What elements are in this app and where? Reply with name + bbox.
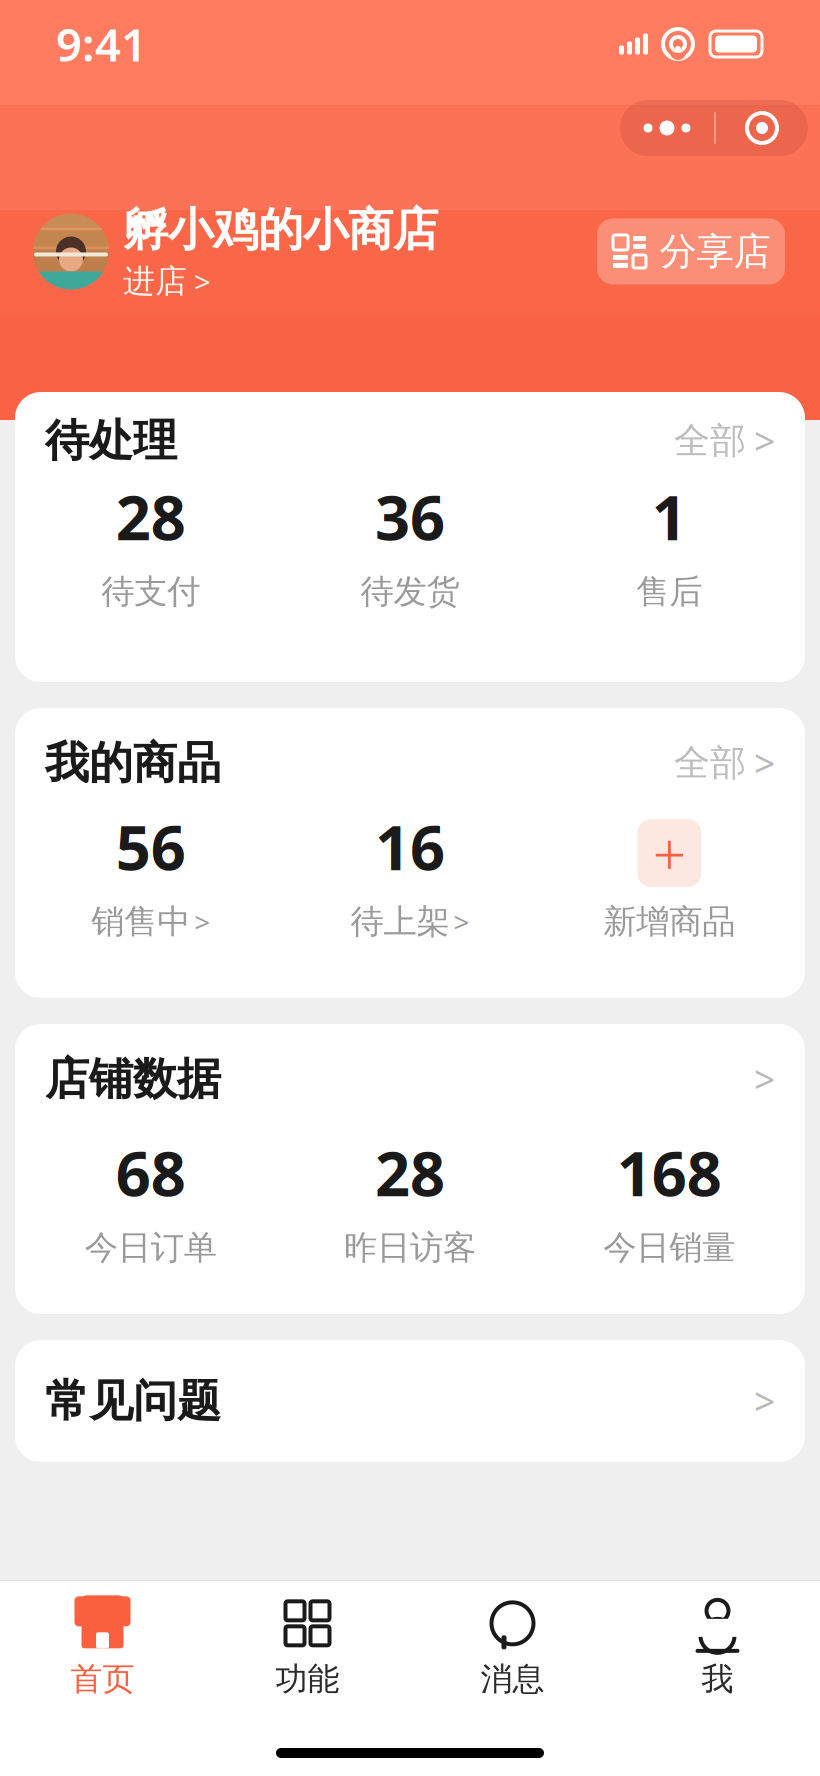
staticText: > xyxy=(754,1376,775,1426)
button[interactable]: 全部 xyxy=(674,741,775,785)
staticText: > xyxy=(754,738,775,788)
staticText: 36 xyxy=(375,476,445,557)
button[interactable]: 28 xyxy=(21,476,280,612)
staticText: 我 xyxy=(701,1659,733,1699)
staticText: 今日订单 xyxy=(85,1227,217,1268)
staticText: 16 xyxy=(375,806,445,887)
staticText: 店铺数据 xyxy=(45,1052,221,1106)
button[interactable]: 常见问题 xyxy=(15,1340,805,1462)
staticText: > xyxy=(194,262,211,301)
staticText: 168 xyxy=(617,1132,722,1213)
button[interactable]: Open 店铺数据 xyxy=(754,1057,775,1101)
button[interactable]: 28 xyxy=(280,1132,540,1268)
staticText: 孵小鸡的小商店 xyxy=(123,202,438,258)
staticText: 常见问题 xyxy=(45,1374,221,1428)
staticText: 新增商品 xyxy=(603,901,735,942)
staticText: 28 xyxy=(375,1132,445,1213)
button[interactable]: More xyxy=(620,100,714,156)
staticText: 消息 xyxy=(480,1659,544,1699)
staticText: > xyxy=(754,416,775,466)
staticText: > xyxy=(453,903,469,940)
button[interactable]: Close xyxy=(716,100,808,156)
staticText: 全部 xyxy=(674,419,746,463)
staticText: 68 xyxy=(116,1132,186,1213)
button[interactable]: 我 xyxy=(615,1593,820,1703)
staticText: 售后 xyxy=(636,571,702,612)
staticText: 昨日访客 xyxy=(344,1227,476,1268)
staticText: 分享店 xyxy=(659,229,770,274)
button[interactable]: 168 xyxy=(540,1132,799,1268)
button[interactable]: 首页 xyxy=(0,1593,205,1703)
button[interactable]: 56 xyxy=(21,806,280,942)
button[interactable]: 16 xyxy=(280,806,540,942)
staticText: 待发货 xyxy=(360,571,459,612)
staticText: 今日销量 xyxy=(603,1227,735,1268)
staticText: > xyxy=(754,1054,775,1104)
staticText: 全部 xyxy=(674,741,746,785)
staticText: 待处理 xyxy=(45,414,177,468)
button[interactable]: 全部 xyxy=(674,419,775,463)
staticText: 1 xyxy=(652,476,687,557)
staticText: + xyxy=(653,814,686,892)
staticText: 待上架 xyxy=(350,901,449,942)
button[interactable]: 36 xyxy=(280,476,540,612)
button[interactable]: 68 xyxy=(21,1132,280,1268)
staticText: 56 xyxy=(116,806,186,887)
staticText: 销售中 xyxy=(91,901,190,942)
button[interactable]: 分享店 xyxy=(597,218,785,284)
button[interactable]: 孵小鸡的小商店 xyxy=(33,202,438,301)
button[interactable]: + xyxy=(540,819,799,942)
button[interactable]: 消息 xyxy=(410,1593,615,1703)
button[interactable]: 功能 xyxy=(205,1593,410,1703)
staticText: 首页 xyxy=(70,1659,134,1699)
staticText: 进店 xyxy=(123,262,187,301)
staticText: 功能 xyxy=(275,1659,339,1699)
staticText: > xyxy=(194,903,210,940)
staticText: 28 xyxy=(116,476,186,557)
staticText: 9:41 xyxy=(56,14,147,74)
staticText: 我的商品 xyxy=(45,736,221,790)
staticText: 待支付 xyxy=(101,571,200,612)
button[interactable]: 1 xyxy=(540,476,799,612)
